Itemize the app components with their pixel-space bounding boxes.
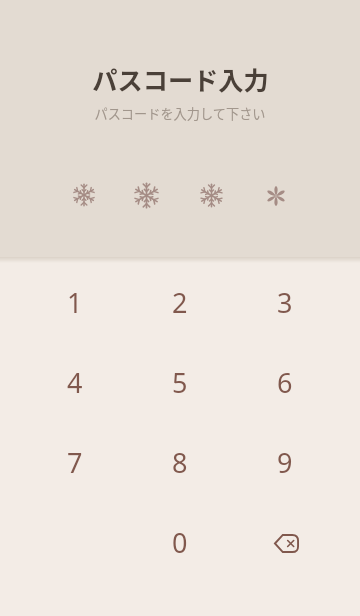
button[interactable]: 1 [23, 262, 127, 342]
button[interactable]: 7 [23, 422, 127, 502]
staticText: 1 [67, 284, 83, 321]
button[interactable]: 6 [232, 342, 337, 422]
staticText: 5 [172, 364, 188, 401]
button[interactable]: 9 [232, 422, 337, 502]
button[interactable]: 0 [127, 502, 232, 582]
staticText: 6 [277, 364, 293, 401]
button[interactable]: 3 [232, 262, 337, 342]
staticText: パスコード入力 [92, 61, 269, 97]
button[interactable]: 4 [23, 342, 127, 422]
button[interactable]: 5 [127, 342, 232, 422]
staticText: 8 [172, 444, 188, 481]
button[interactable]: Delete [232, 502, 337, 582]
staticText: 0 [172, 524, 188, 561]
button[interactable]: 8 [127, 422, 232, 502]
staticText: 4 [67, 364, 83, 401]
staticText: 3 [277, 284, 293, 321]
other: Delete [274, 534, 299, 553]
staticText: 7 [67, 444, 83, 481]
staticText: パスコードを入力して下さい [94, 104, 266, 123]
staticText: 2 [172, 284, 188, 321]
staticText: 9 [277, 444, 293, 481]
button[interactable]: 2 [127, 262, 232, 342]
